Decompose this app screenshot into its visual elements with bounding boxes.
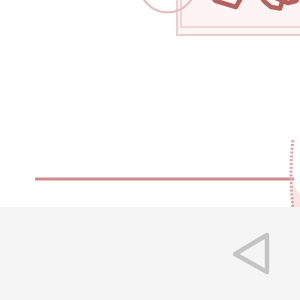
button[interactable]: Drawing canvas [0, 0, 300, 300]
button[interactable]: Back [225, 228, 277, 280]
